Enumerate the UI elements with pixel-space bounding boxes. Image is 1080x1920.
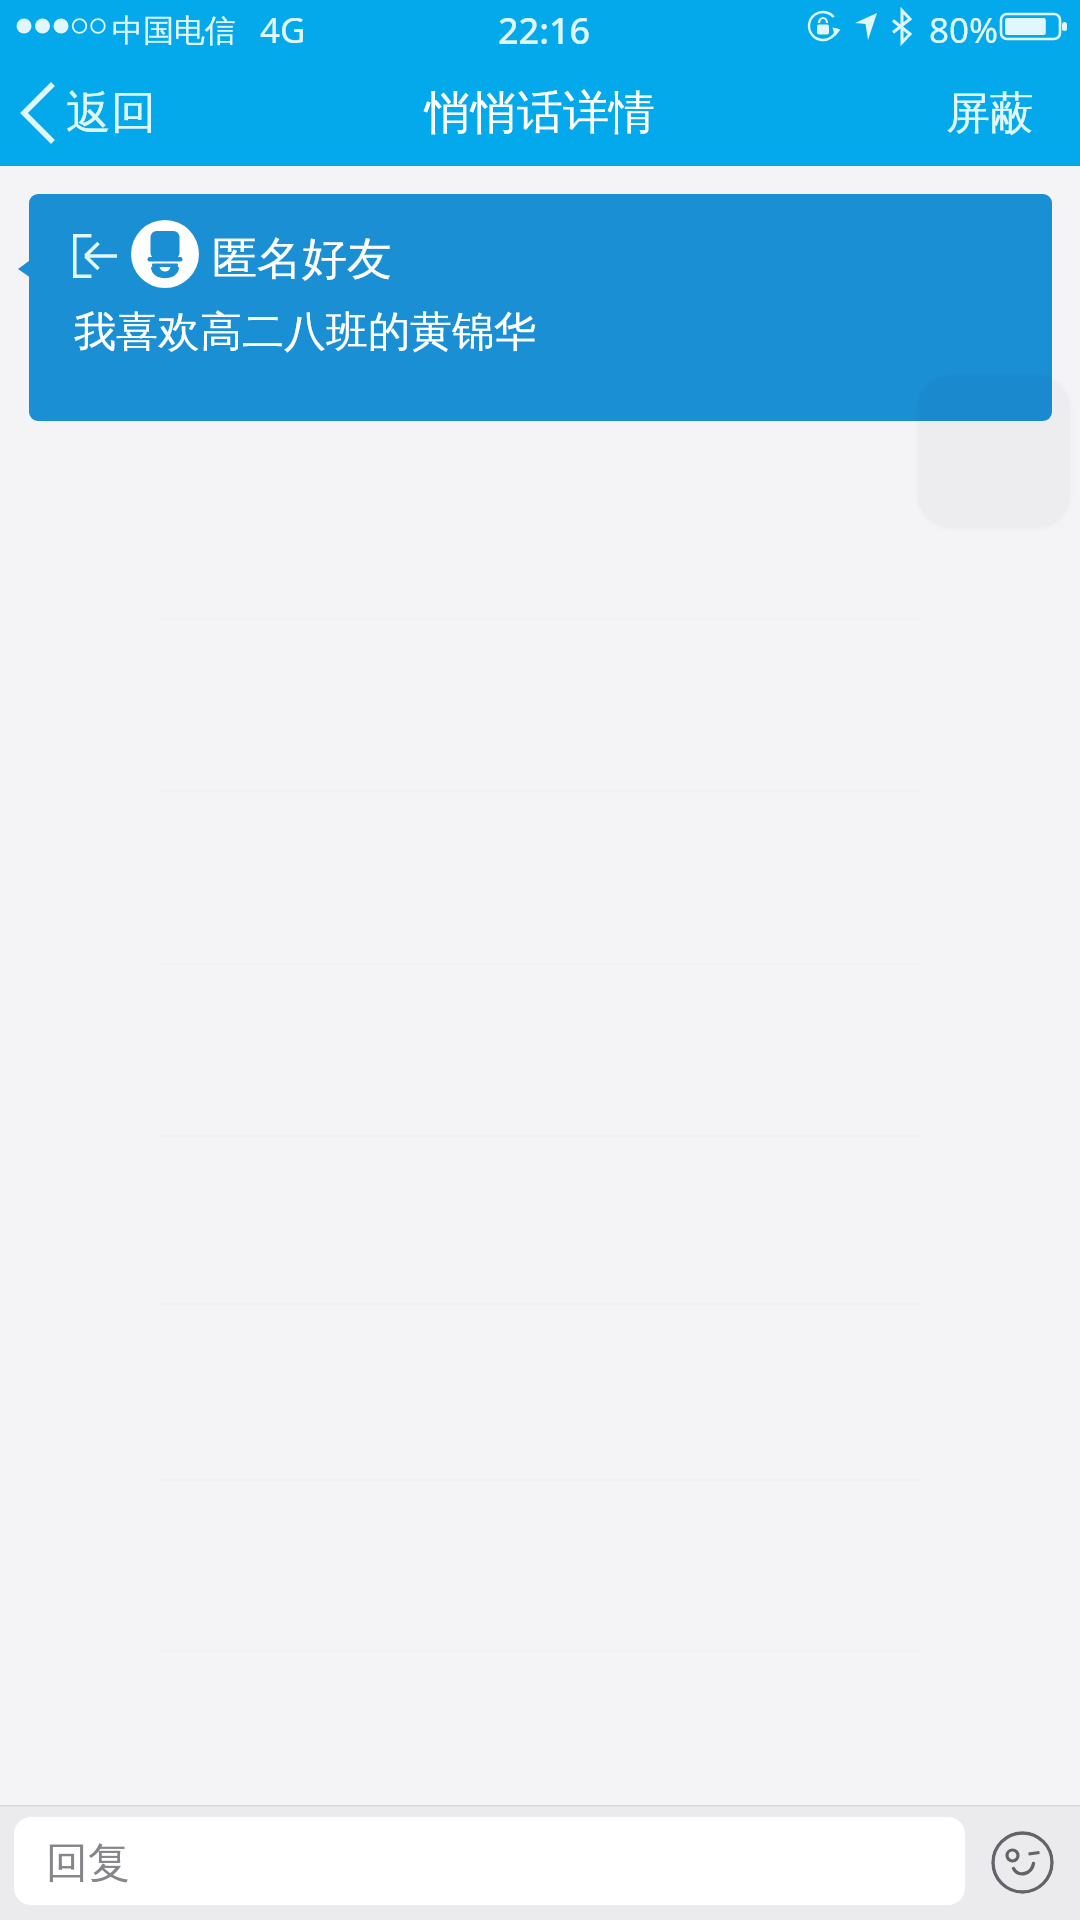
staticText: 回复 — [46, 1837, 130, 1890]
staticText: 22:16 — [498, 6, 591, 55]
button[interactable]: 返回 — [0, 60, 180, 166]
button[interactable]: 回复 — [14, 1817, 965, 1905]
staticText: 中国电信 — [112, 11, 236, 50]
button[interactable]: 屏蔽 — [916, 60, 1080, 166]
staticText: 80% — [929, 6, 999, 54]
staticText: 悄悄话详情 — [425, 84, 655, 142]
staticText: 4G — [260, 6, 306, 54]
button[interactable]: 匿名好友 — [29, 194, 1052, 421]
staticText: 我喜欢高二八班的黄锦华 — [74, 306, 536, 359]
button[interactable]: Quick action — [908, 366, 1080, 538]
staticText: 屏蔽 — [946, 86, 1034, 141]
button[interactable]: Emoji — [991, 1831, 1054, 1894]
staticText: 匿名好友 — [212, 231, 392, 288]
staticText: 返回 — [66, 85, 156, 142]
